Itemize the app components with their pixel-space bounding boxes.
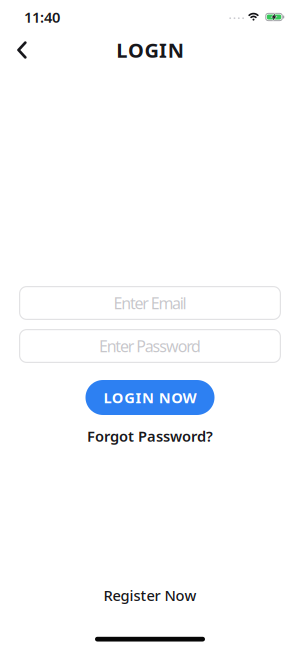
staticText: Enter Password xyxy=(99,335,201,357)
staticText: 11:40 xyxy=(24,7,60,27)
staticText: Forgot Password? xyxy=(87,426,213,446)
button[interactable]: Enter Email xyxy=(0,286,300,320)
button[interactable]: Register Now xyxy=(50,585,250,605)
button[interactable]: Enter Password xyxy=(0,329,300,363)
button[interactable]: Forgot Password? xyxy=(50,426,250,446)
button[interactable]: Back xyxy=(0,32,27,68)
staticText: Register Now xyxy=(103,586,196,605)
staticText: LOGIN NOW xyxy=(103,388,197,407)
staticText: LOGIN xyxy=(116,37,184,63)
button[interactable]: LOGIN NOW xyxy=(85,380,214,415)
staticText: Enter Email xyxy=(113,292,186,314)
